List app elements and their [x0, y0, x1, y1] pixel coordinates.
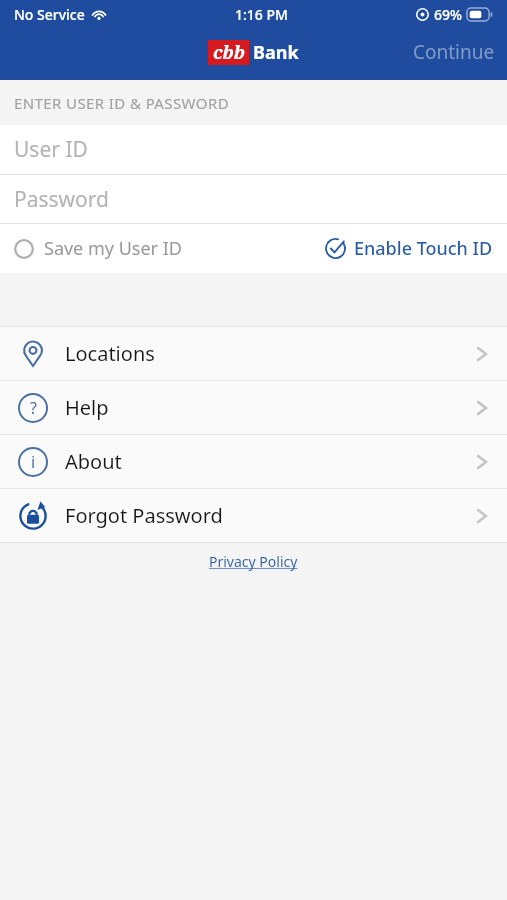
staticText: i [31, 451, 36, 473]
staticText: Password [14, 185, 109, 214]
staticText: Continue [413, 39, 495, 65]
staticText: Help [65, 394, 109, 421]
button[interactable]: Save my User ID [0, 228, 190, 269]
staticText: Locations [65, 340, 155, 367]
staticText: ENTER USER ID & PASSWORD [14, 93, 230, 113]
staticText: Enable Touch ID [354, 236, 493, 261]
staticText: Save my User ID [44, 236, 182, 261]
button[interactable]: Locations [0, 327, 507, 380]
button[interactable]: Enable Touch ID [317, 228, 507, 269]
button[interactable]: i [0, 435, 507, 488]
staticText: cbb [213, 40, 245, 65]
staticText: Forgot Password [65, 502, 223, 529]
button[interactable]: Password [0, 175, 507, 223]
staticText: Privacy Policy [209, 552, 298, 571]
staticText: 69% [434, 5, 462, 24]
button[interactable]: Privacy Policy [203, 546, 304, 577]
staticText: 1:16 PM [235, 5, 288, 24]
button[interactable]: Forgot Password [0, 489, 507, 542]
button[interactable]: User ID [0, 125, 507, 174]
staticText: Bank [253, 40, 299, 65]
staticText: User ID [14, 135, 88, 164]
staticText: About [65, 448, 122, 475]
staticText: ? [30, 397, 37, 419]
staticText: No Service [14, 5, 85, 24]
button[interactable]: Continue [401, 33, 507, 71]
button[interactable]: ? [0, 381, 507, 434]
